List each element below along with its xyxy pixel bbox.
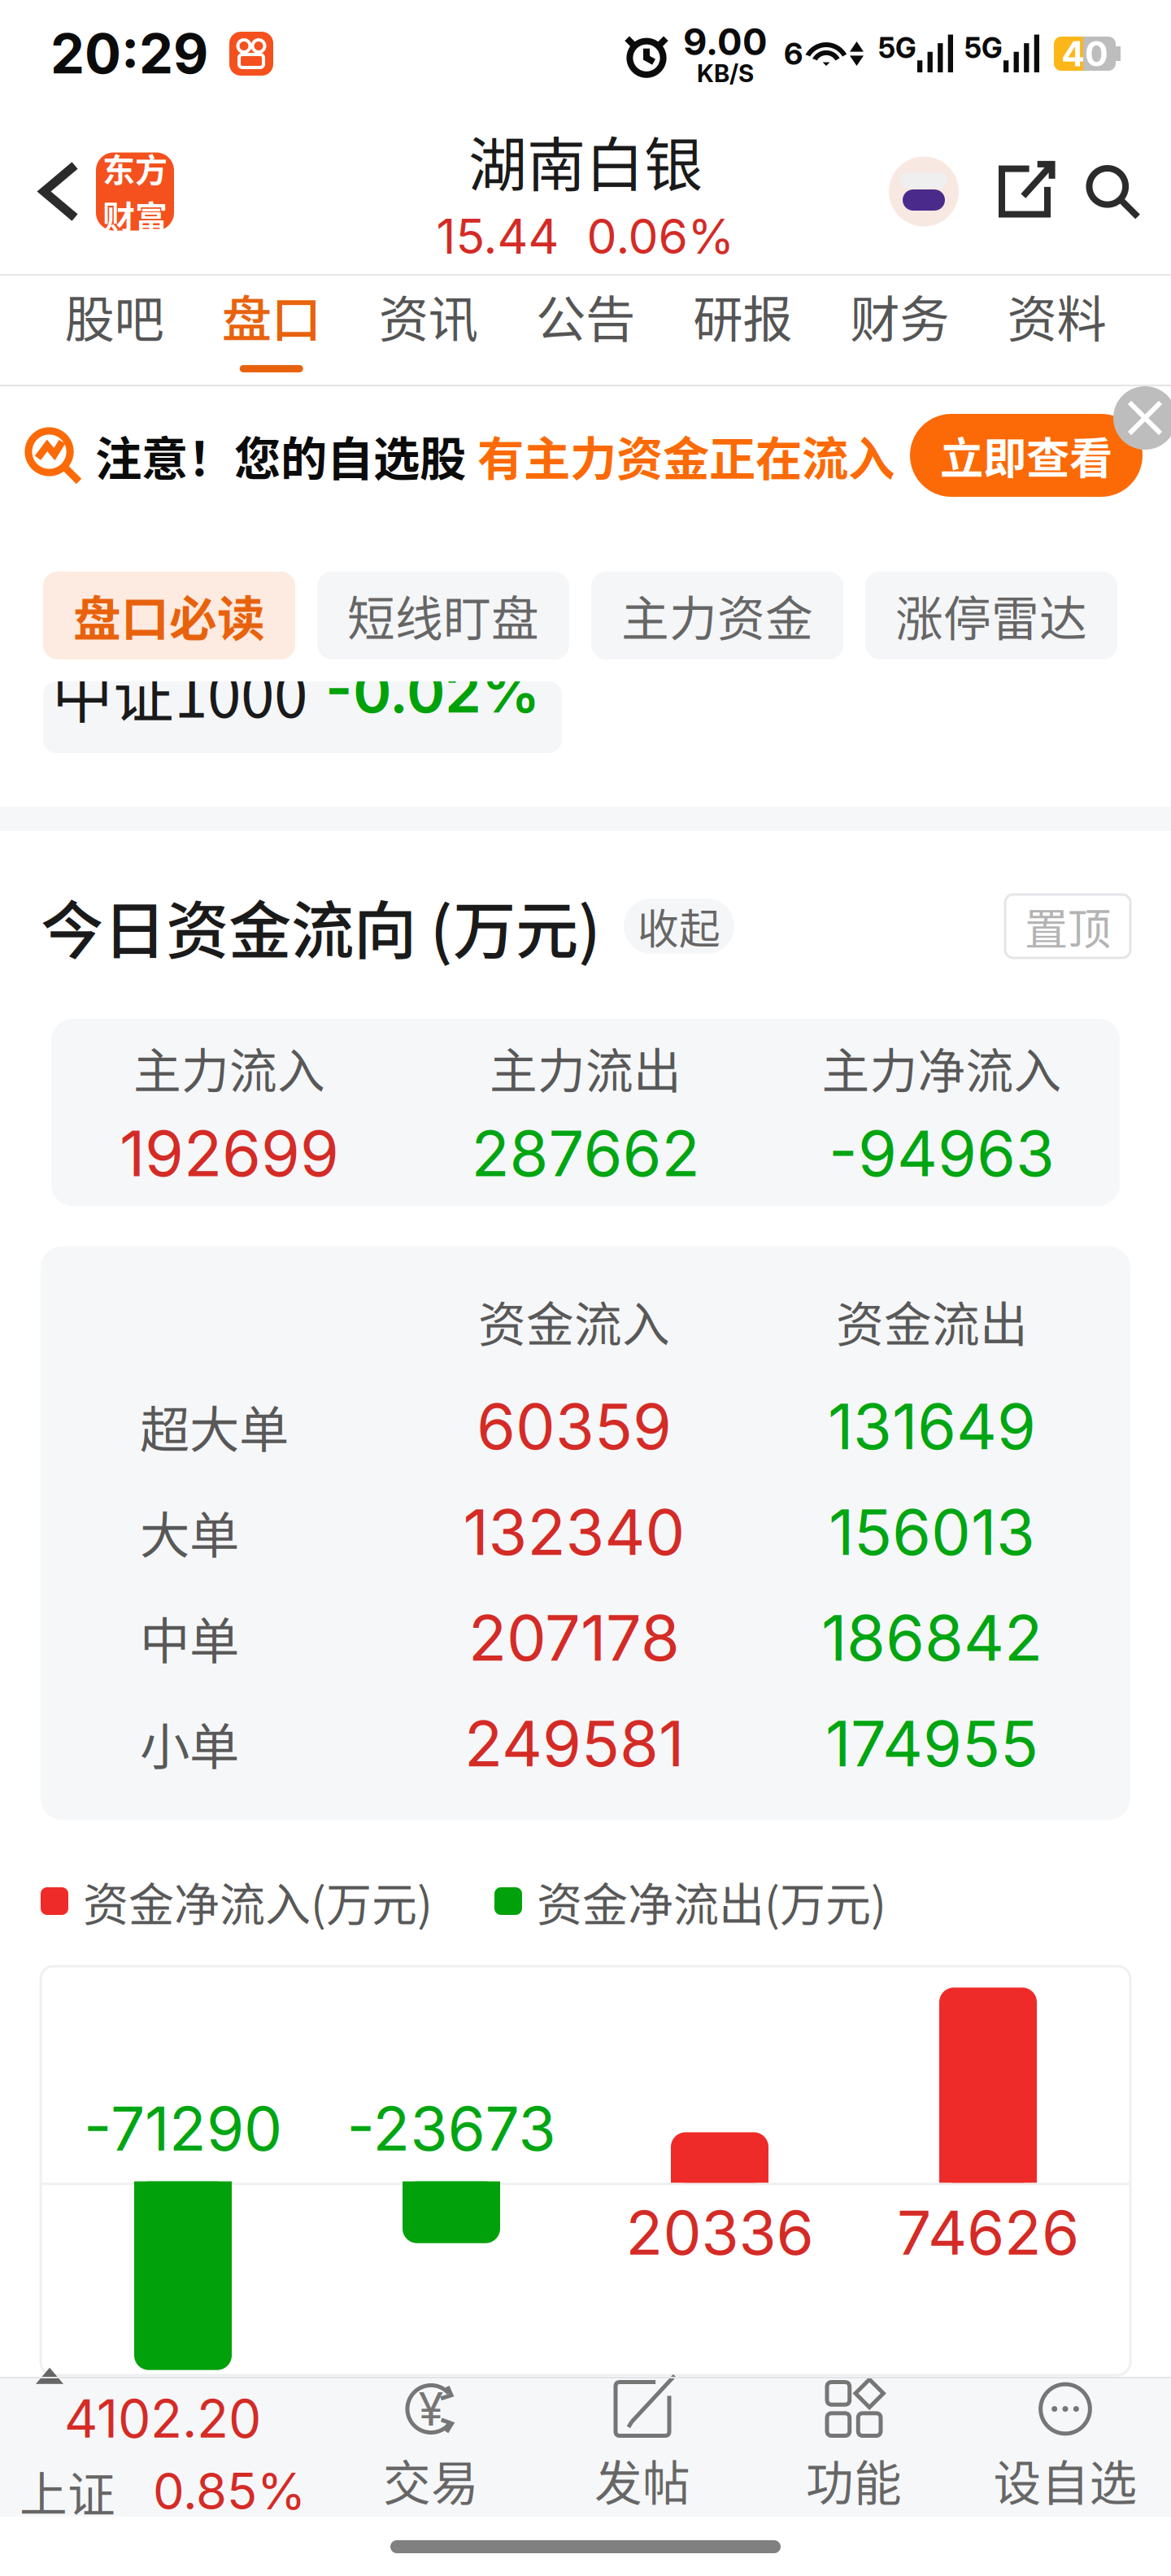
- staticText: 主力资金: [621, 581, 813, 650]
- staticText: 40: [1061, 33, 1108, 75]
- staticText: 174955: [825, 1705, 1038, 1781]
- staticText: 功能: [806, 2445, 902, 2515]
- staticText: 超大单: [140, 1390, 289, 1462]
- button[interactable]: Back: [23, 141, 96, 242]
- staticText: 公告: [536, 280, 635, 352]
- button[interactable]: Search: [1077, 156, 1148, 227]
- staticText: 0.06%: [587, 207, 735, 265]
- button[interactable]: 公告: [507, 276, 664, 386]
- button[interactable]: 置顶: [1005, 894, 1130, 958]
- button[interactable]: 研报: [664, 276, 821, 386]
- staticText: 6: [784, 35, 803, 72]
- staticText: 5G: [878, 31, 916, 65]
- button[interactable]: 涨停雷达: [865, 572, 1117, 659]
- staticText: 207178: [468, 1600, 680, 1676]
- staticText: -71290: [84, 2092, 282, 2165]
- button[interactable]: ¥: [325, 2377, 537, 2517]
- staticText: 192699: [120, 1115, 339, 1191]
- staticText: KB/S: [697, 59, 754, 88]
- button[interactable]: Close: [1113, 386, 1171, 450]
- staticText: 9.00: [683, 19, 768, 64]
- staticText: 注意！您的自选股: [95, 422, 466, 489]
- staticText: 湖南白银: [468, 118, 703, 203]
- staticText: 156013: [829, 1494, 1035, 1570]
- staticText: 0.85%: [153, 2461, 306, 2521]
- button[interactable]: 4102.20: [0, 2377, 325, 2517]
- button[interactable]: 收起: [624, 899, 734, 954]
- staticText: 中证1000: [52, 647, 307, 735]
- staticText: 主力净流入: [822, 1033, 1062, 1102]
- button[interactable]: 资讯: [350, 276, 507, 386]
- staticText: 大单: [140, 1496, 239, 1568]
- button[interactable]: 盘口必读: [43, 572, 295, 659]
- staticText: 小单: [140, 1707, 239, 1779]
- button[interactable]: 功能: [748, 2377, 960, 2517]
- staticText: 盘口: [222, 280, 321, 352]
- button[interactable]: East Money: [96, 152, 174, 231]
- staticText: 发帖: [594, 2445, 690, 2515]
- staticText: 287662: [471, 1115, 700, 1191]
- staticText: 有主力资金正在流入: [477, 422, 895, 489]
- button[interactable]: 资料: [978, 276, 1135, 386]
- staticText: 盘口必读: [73, 581, 265, 650]
- staticText: 财富: [102, 191, 168, 239]
- button[interactable]: Share: [989, 156, 1060, 227]
- staticText: -0.02%: [325, 656, 540, 727]
- staticText: -23673: [347, 2092, 556, 2165]
- staticText: ¥: [418, 2381, 444, 2436]
- staticText: 资金净流出(万元): [537, 1868, 886, 1934]
- staticText: 20:29: [50, 21, 208, 87]
- staticText: 东方: [102, 144, 168, 191]
- staticText: 60359: [477, 1388, 672, 1464]
- staticText: 资金流出: [836, 1287, 1028, 1356]
- button[interactable]: 主力资金: [591, 572, 843, 659]
- staticText: 研报: [693, 280, 792, 352]
- staticText: 15.44: [436, 207, 559, 265]
- button[interactable]: 设自选: [960, 2377, 1171, 2517]
- staticText: 资讯: [379, 280, 478, 352]
- staticText: 资金流入: [478, 1287, 670, 1356]
- button[interactable]: 股吧: [36, 276, 193, 386]
- staticText: 20336: [626, 2196, 814, 2269]
- button[interactable]: 盘口: [193, 276, 350, 386]
- staticText: 132340: [463, 1494, 685, 1570]
- staticText: 立即查看: [940, 424, 1112, 487]
- staticText: 股吧: [65, 280, 164, 352]
- staticText: 主力流出: [490, 1033, 681, 1102]
- staticText: 主力流入: [133, 1033, 325, 1102]
- staticText: 131649: [828, 1388, 1036, 1464]
- staticText: 置顶: [1025, 895, 1111, 958]
- staticText: 资金净流入(万元): [83, 1868, 433, 1934]
- staticText: 短线盯盘: [347, 581, 539, 650]
- staticText: 中单: [140, 1602, 239, 1674]
- staticText: 今日资金流向 (万元): [41, 881, 601, 972]
- staticText: 74626: [897, 2196, 1079, 2269]
- staticText: 设自选: [993, 2445, 1137, 2515]
- staticText: 交易: [383, 2445, 479, 2515]
- staticText: 收起: [638, 896, 720, 956]
- staticText: 资料: [1007, 280, 1106, 352]
- staticText: 5G: [964, 31, 1003, 65]
- button[interactable]: 发帖: [537, 2377, 748, 2517]
- button[interactable]: 立即查看: [910, 414, 1143, 497]
- button[interactable]: 短线盯盘: [317, 572, 569, 659]
- staticText: 4102.20: [64, 2387, 261, 2450]
- staticText: 249581: [464, 1705, 684, 1781]
- staticText: 财务: [850, 280, 949, 352]
- button[interactable]: Assistant: [886, 154, 961, 229]
- staticText: 涨停雷达: [895, 581, 1087, 650]
- staticText: -94963: [829, 1115, 1055, 1191]
- button[interactable]: 财务: [821, 276, 978, 386]
- staticText: 186842: [821, 1600, 1043, 1676]
- staticText: 上证: [20, 2457, 115, 2526]
